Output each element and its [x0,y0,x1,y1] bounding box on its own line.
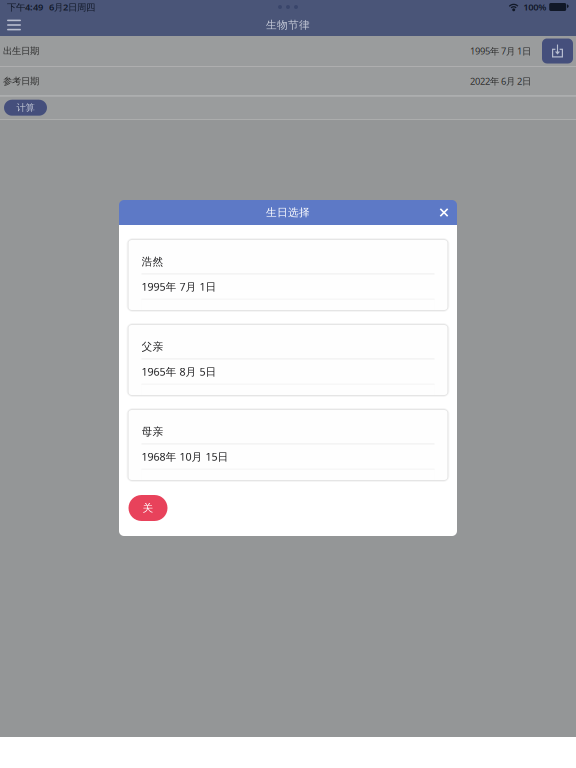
staticText: 父亲 [141,340,163,353]
button[interactable]: 浩然 [126,240,449,310]
staticText: 下午4:49 6月2日周四 [7,1,95,13]
staticText: 出生日期 [3,45,39,57]
staticText: 计算 [16,102,34,113]
staticText: 1995年 7月 1日 [141,279,216,294]
staticText: 1968年 10月 15日 [141,449,228,464]
staticText: 生日选择 [266,206,310,219]
button[interactable]: 父亲 [126,325,449,395]
staticText: 1965年 8月 5日 [141,364,216,379]
staticText: 2022年 6月 2日 [470,75,531,87]
staticText: 浩然 [141,255,163,268]
button[interactable]: 计算 [4,100,47,116]
button[interactable]: 关 [128,495,167,521]
button[interactable]: Close [433,200,455,225]
button[interactable]: Menu [0,14,25,36]
button[interactable]: 母亲 [126,410,449,480]
staticText: 1995年 7月 1日 [470,45,531,57]
button[interactable]: Save [542,38,573,63]
staticText: 100% [523,1,546,13]
staticText: 母亲 [141,425,163,438]
staticText: 生物节律 [266,18,310,31]
staticText: 关 [142,501,153,514]
staticText: 参考日期 [3,75,39,87]
